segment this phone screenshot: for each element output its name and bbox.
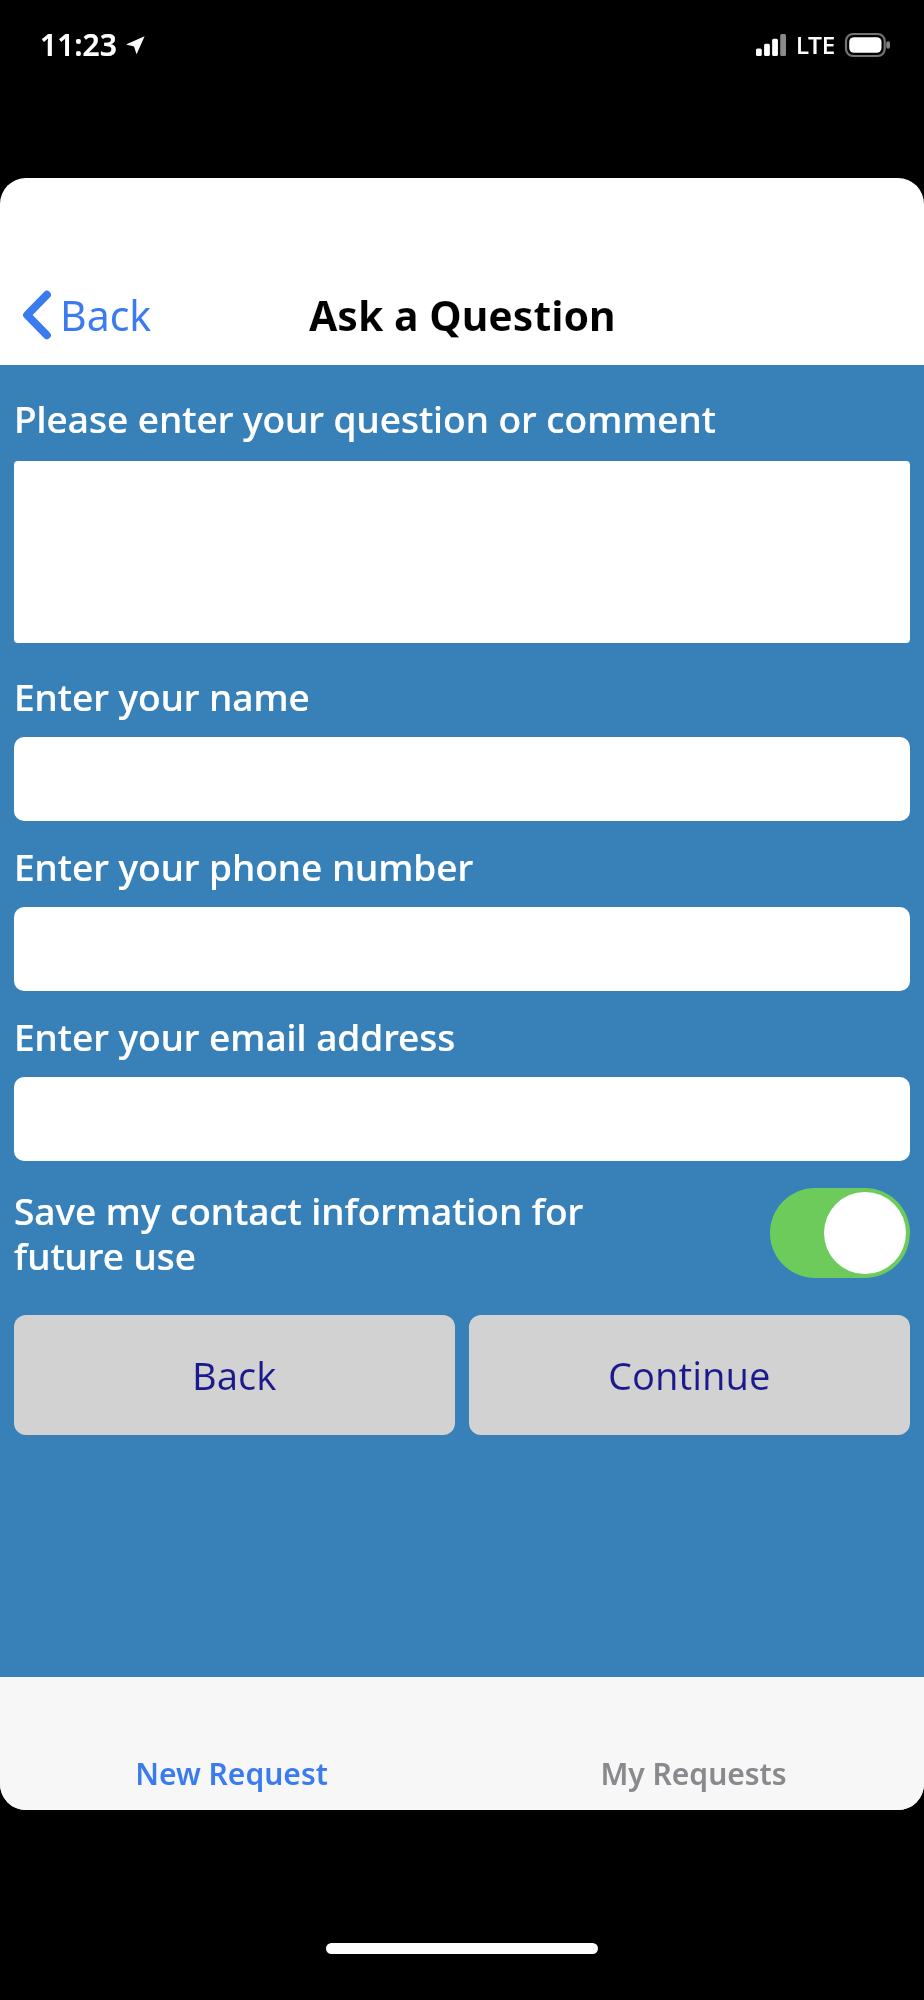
button[interactable]: [14, 737, 910, 821]
staticText: Continue: [608, 1349, 771, 1401]
button[interactable]: New Request: [0, 1753, 462, 1794]
staticText: Enter your phone number: [14, 841, 474, 891]
button[interactable]: Save my contact information toggle, on: [770, 1188, 910, 1278]
staticText: Back: [60, 287, 152, 343]
button[interactable]: [14, 907, 910, 991]
button[interactable]: [14, 1077, 910, 1161]
staticText: New Request: [135, 1753, 328, 1794]
staticText: Please enter your question or comment: [14, 393, 716, 443]
button[interactable]: My Requests: [462, 1753, 924, 1794]
staticText: Enter your email address: [14, 1011, 456, 1061]
button[interactable]: Back: [18, 283, 158, 347]
staticText: Enter your name: [14, 671, 310, 721]
button[interactable]: Continue: [469, 1315, 910, 1435]
staticText: Back: [192, 1349, 277, 1401]
staticText: My Requests: [600, 1753, 787, 1794]
staticText: Save my contact information for future u…: [14, 1185, 756, 1281]
staticText: LTE: [796, 28, 836, 61]
staticText: Ask a Question: [309, 287, 616, 343]
button[interactable]: Back: [14, 1315, 455, 1435]
staticText: 11:23: [40, 24, 117, 65]
